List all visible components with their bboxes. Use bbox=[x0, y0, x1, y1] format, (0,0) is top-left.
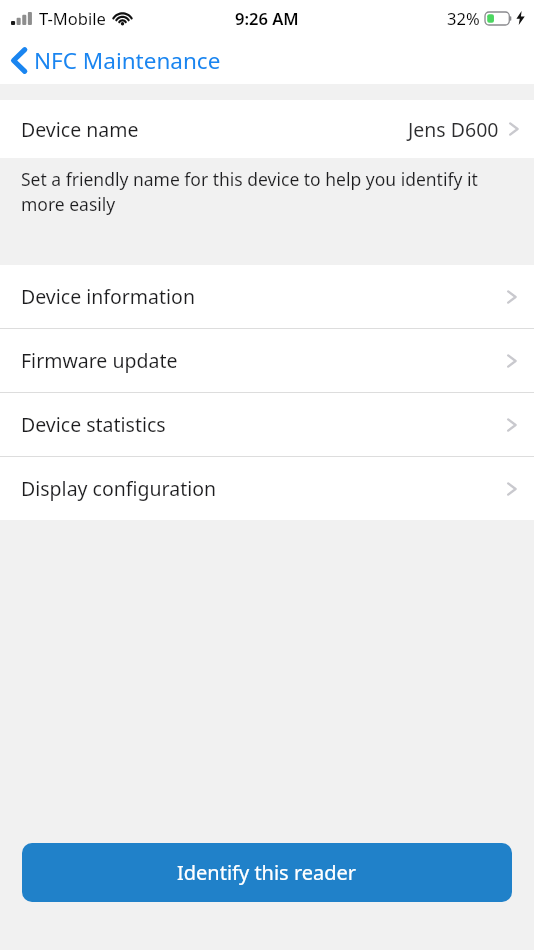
button[interactable]: Firmware update bbox=[0, 329, 534, 392]
staticText: Firmware update bbox=[21, 347, 178, 374]
button[interactable]: Device name bbox=[0, 100, 534, 158]
staticText: Jens D600 bbox=[408, 116, 499, 143]
staticText: Identify this reader bbox=[177, 859, 357, 886]
button[interactable]: Identify this reader bbox=[22, 843, 512, 902]
button[interactable]: Device statistics bbox=[0, 393, 534, 456]
staticText: Device information bbox=[21, 283, 195, 310]
button[interactable]: Display configuration bbox=[0, 457, 534, 520]
staticText: Device statistics bbox=[21, 411, 166, 438]
staticText: NFC Maintenance bbox=[34, 45, 221, 76]
staticText: 9:26 AM bbox=[235, 7, 299, 29]
staticText: Display configuration bbox=[21, 475, 217, 502]
other: Back bbox=[11, 47, 27, 74]
button[interactable]: Device information bbox=[0, 265, 534, 328]
staticText: 32% bbox=[447, 7, 480, 29]
button[interactable]: Back bbox=[0, 41, 231, 80]
staticText: Device name bbox=[21, 116, 139, 143]
staticText: Set a friendly name for this device to h… bbox=[21, 167, 494, 216]
staticText: T-Mobile bbox=[39, 7, 106, 29]
